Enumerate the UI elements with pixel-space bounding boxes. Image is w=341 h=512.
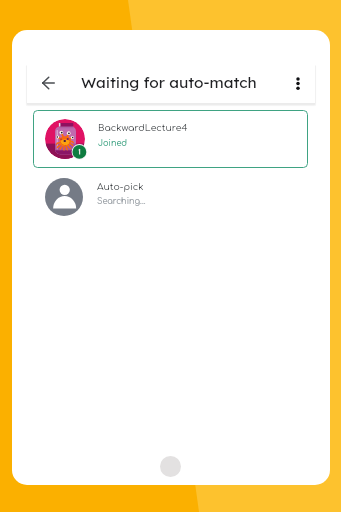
button[interactable]: Auto-pick xyxy=(33,175,308,233)
staticText: BackwardLecture4 xyxy=(98,123,188,133)
staticText: Auto-pick xyxy=(97,182,144,192)
button[interactable]: More options xyxy=(285,66,311,92)
staticText: Joined xyxy=(98,139,128,148)
button[interactable]: Home xyxy=(160,456,181,477)
button[interactable]: Back xyxy=(27,70,53,96)
staticText: Waiting for auto-match xyxy=(81,73,257,92)
button[interactable]: BackwardLecture4 xyxy=(33,110,308,168)
staticText: Searching... xyxy=(97,197,146,206)
